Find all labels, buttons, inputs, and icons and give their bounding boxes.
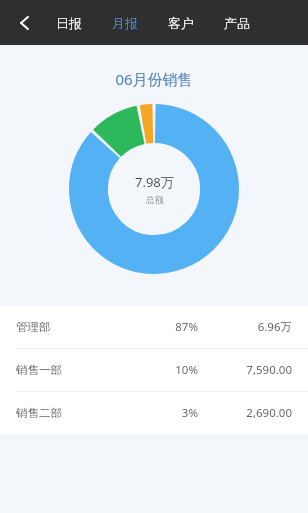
button[interactable]: 销售一部 [0, 348, 308, 391]
staticText: 2,690.00 [220, 405, 292, 421]
button[interactable]: 客户 [164, 9, 198, 37]
staticText: 销售二部 [16, 406, 62, 420]
staticText: 日报 [56, 15, 82, 31]
button[interactable]: 销售二部 [0, 391, 308, 434]
button[interactable]: 月报 [108, 9, 142, 37]
staticText: 06月份销售 [0, 69, 308, 89]
staticText: 7.98万 [135, 173, 174, 191]
staticText: 10% [142, 362, 198, 378]
staticText: 销售一部 [16, 363, 62, 377]
staticText: 7,590.00 [220, 362, 292, 378]
staticText: 6.96万 [220, 319, 292, 335]
staticText: 87% [142, 319, 198, 335]
staticText: 产品 [224, 15, 250, 31]
staticText: 月报 [112, 15, 138, 31]
staticText: 客户 [168, 15, 194, 31]
button[interactable]: Back [8, 6, 42, 40]
button[interactable]: 日报 [52, 9, 86, 37]
staticText: 总额 [146, 194, 164, 205]
button[interactable]: 产品 [220, 9, 254, 37]
staticText: 管理部 [16, 320, 51, 334]
button[interactable]: 管理部 [0, 306, 308, 348]
staticText: 3% [142, 405, 198, 421]
